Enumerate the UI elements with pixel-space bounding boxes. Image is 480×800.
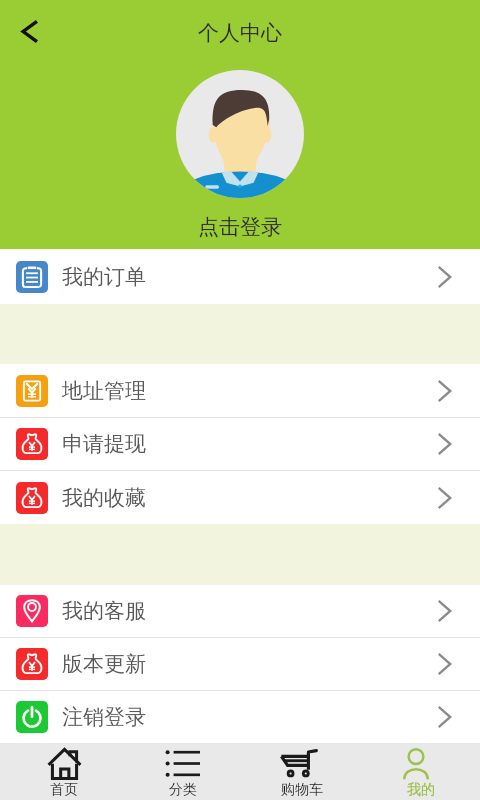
button[interactable]: 首页 [5,743,123,800]
button[interactable]: 我的订单 [0,249,480,304]
staticText: 我的 [407,781,435,799]
staticText: 首页 [50,781,78,799]
button[interactable]: 我的客服 [0,585,480,637]
staticText: 注销登录 [62,704,146,730]
button[interactable]: Back [7,8,53,54]
button[interactable]: 我的 [361,743,480,800]
button[interactable]: Avatar [176,70,304,198]
staticText: 个人中心 [198,20,282,46]
staticText: 版本更新 [62,651,146,677]
staticText: 地址管理 [62,378,146,404]
button[interactable]: 点击登录 [198,214,282,240]
staticText: 分类 [169,781,197,799]
button[interactable]: 个人中心 [198,20,282,46]
button[interactable]: 我的收藏 [0,471,480,524]
staticText: 点击登录 [198,214,282,240]
staticText: 我的客服 [62,598,146,624]
staticText: 我的订单 [62,264,146,290]
staticText: 申请提现 [62,431,146,457]
staticText: 我的收藏 [62,485,146,511]
button[interactable]: 注销登录 [0,691,480,743]
button[interactable]: 分类 [123,743,242,800]
button[interactable]: 地址管理 [0,364,480,417]
button[interactable]: 购物车 [242,743,361,800]
button[interactable]: 申请提现 [0,418,480,470]
button[interactable]: 版本更新 [0,638,480,690]
staticText: 购物车 [281,781,323,799]
